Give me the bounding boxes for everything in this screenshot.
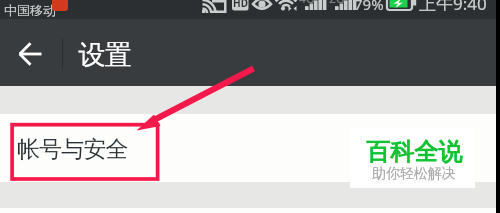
staticText: 上午9:40 bbox=[419, 0, 487, 11]
button[interactable]: Back bbox=[6, 30, 54, 78]
staticText: 2G bbox=[329, 0, 345, 6]
staticText: 设置 bbox=[79, 38, 131, 72]
staticText: HD bbox=[233, 0, 248, 10]
staticText: 4G bbox=[299, 0, 315, 6]
staticText: 助你轻松解决 bbox=[372, 165, 456, 183]
staticText: 百科全说 bbox=[366, 137, 462, 167]
staticText: 79% bbox=[354, 0, 384, 13]
button[interactable]: 帐号与安全 bbox=[0, 114, 496, 182]
staticText: 帐号与安全 bbox=[17, 135, 128, 164]
staticText: 中国移动 bbox=[4, 2, 56, 18]
